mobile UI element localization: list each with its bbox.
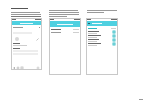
button[interactable]	[11, 21, 42, 25]
button[interactable]: Copy	[88, 38, 115, 42]
button[interactable]: More	[13, 25, 40, 30]
other: Settings	[36, 38, 39, 41]
button[interactable]: Copy	[88, 30, 115, 34]
other: Back	[13, 67, 15, 69]
other: Account	[15, 37, 19, 41]
button[interactable]	[51, 28, 79, 31]
button[interactable]: Copy	[88, 34, 115, 38]
button[interactable]	[51, 31, 79, 34]
button[interactable]	[49, 21, 81, 27]
button[interactable]: Copy	[88, 42, 115, 46]
button[interactable]	[86, 21, 118, 26]
